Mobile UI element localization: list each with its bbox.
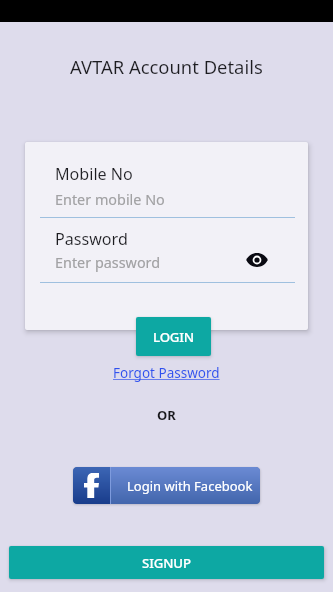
button[interactable]: Show password bbox=[243, 246, 271, 274]
staticText: OR bbox=[157, 406, 176, 424]
staticText: AVTAR Account Details bbox=[70, 54, 263, 79]
staticText: Password bbox=[55, 228, 128, 250]
button[interactable]: Login with Facebook bbox=[73, 467, 260, 504]
button[interactable]: SIGNUP bbox=[9, 546, 324, 579]
button[interactable]: LOGIN bbox=[136, 317, 211, 356]
button[interactable]: Forgot Password bbox=[113, 364, 220, 382]
staticText: Enter mobile No bbox=[55, 190, 165, 210]
staticText: LOGIN bbox=[153, 328, 194, 346]
staticText: SIGNUP bbox=[142, 554, 191, 572]
staticText: Mobile No bbox=[55, 163, 133, 185]
staticText: Enter password bbox=[55, 253, 161, 273]
staticText: Forgot Password bbox=[113, 364, 220, 382]
staticText: Login with Facebook bbox=[127, 477, 253, 495]
